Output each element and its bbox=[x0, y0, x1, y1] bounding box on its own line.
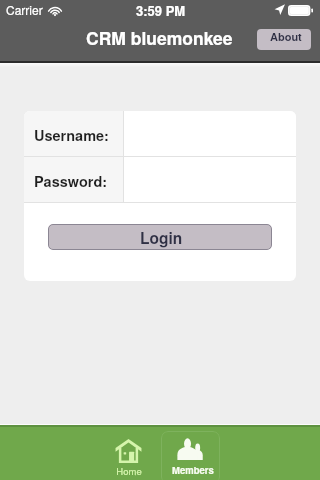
staticText: CRM bluemonkee bbox=[86, 25, 233, 50]
button[interactable]: About bbox=[257, 29, 311, 50]
other: Members bbox=[177, 438, 203, 460]
staticText: Login bbox=[140, 227, 183, 249]
staticText: Carrier bbox=[6, 1, 43, 18]
staticText: Members bbox=[172, 463, 214, 477]
staticText: Home bbox=[116, 464, 142, 478]
button[interactable]: Login bbox=[48, 224, 272, 250]
staticText: Password: bbox=[34, 171, 108, 192]
staticText: About bbox=[270, 29, 302, 45]
button[interactable]: Home bbox=[104, 429, 152, 480]
other: Home bbox=[115, 438, 142, 463]
button[interactable]: Members bbox=[161, 431, 220, 480]
staticText: Username: bbox=[34, 125, 109, 146]
staticText: 3:59 PM bbox=[136, 1, 186, 20]
